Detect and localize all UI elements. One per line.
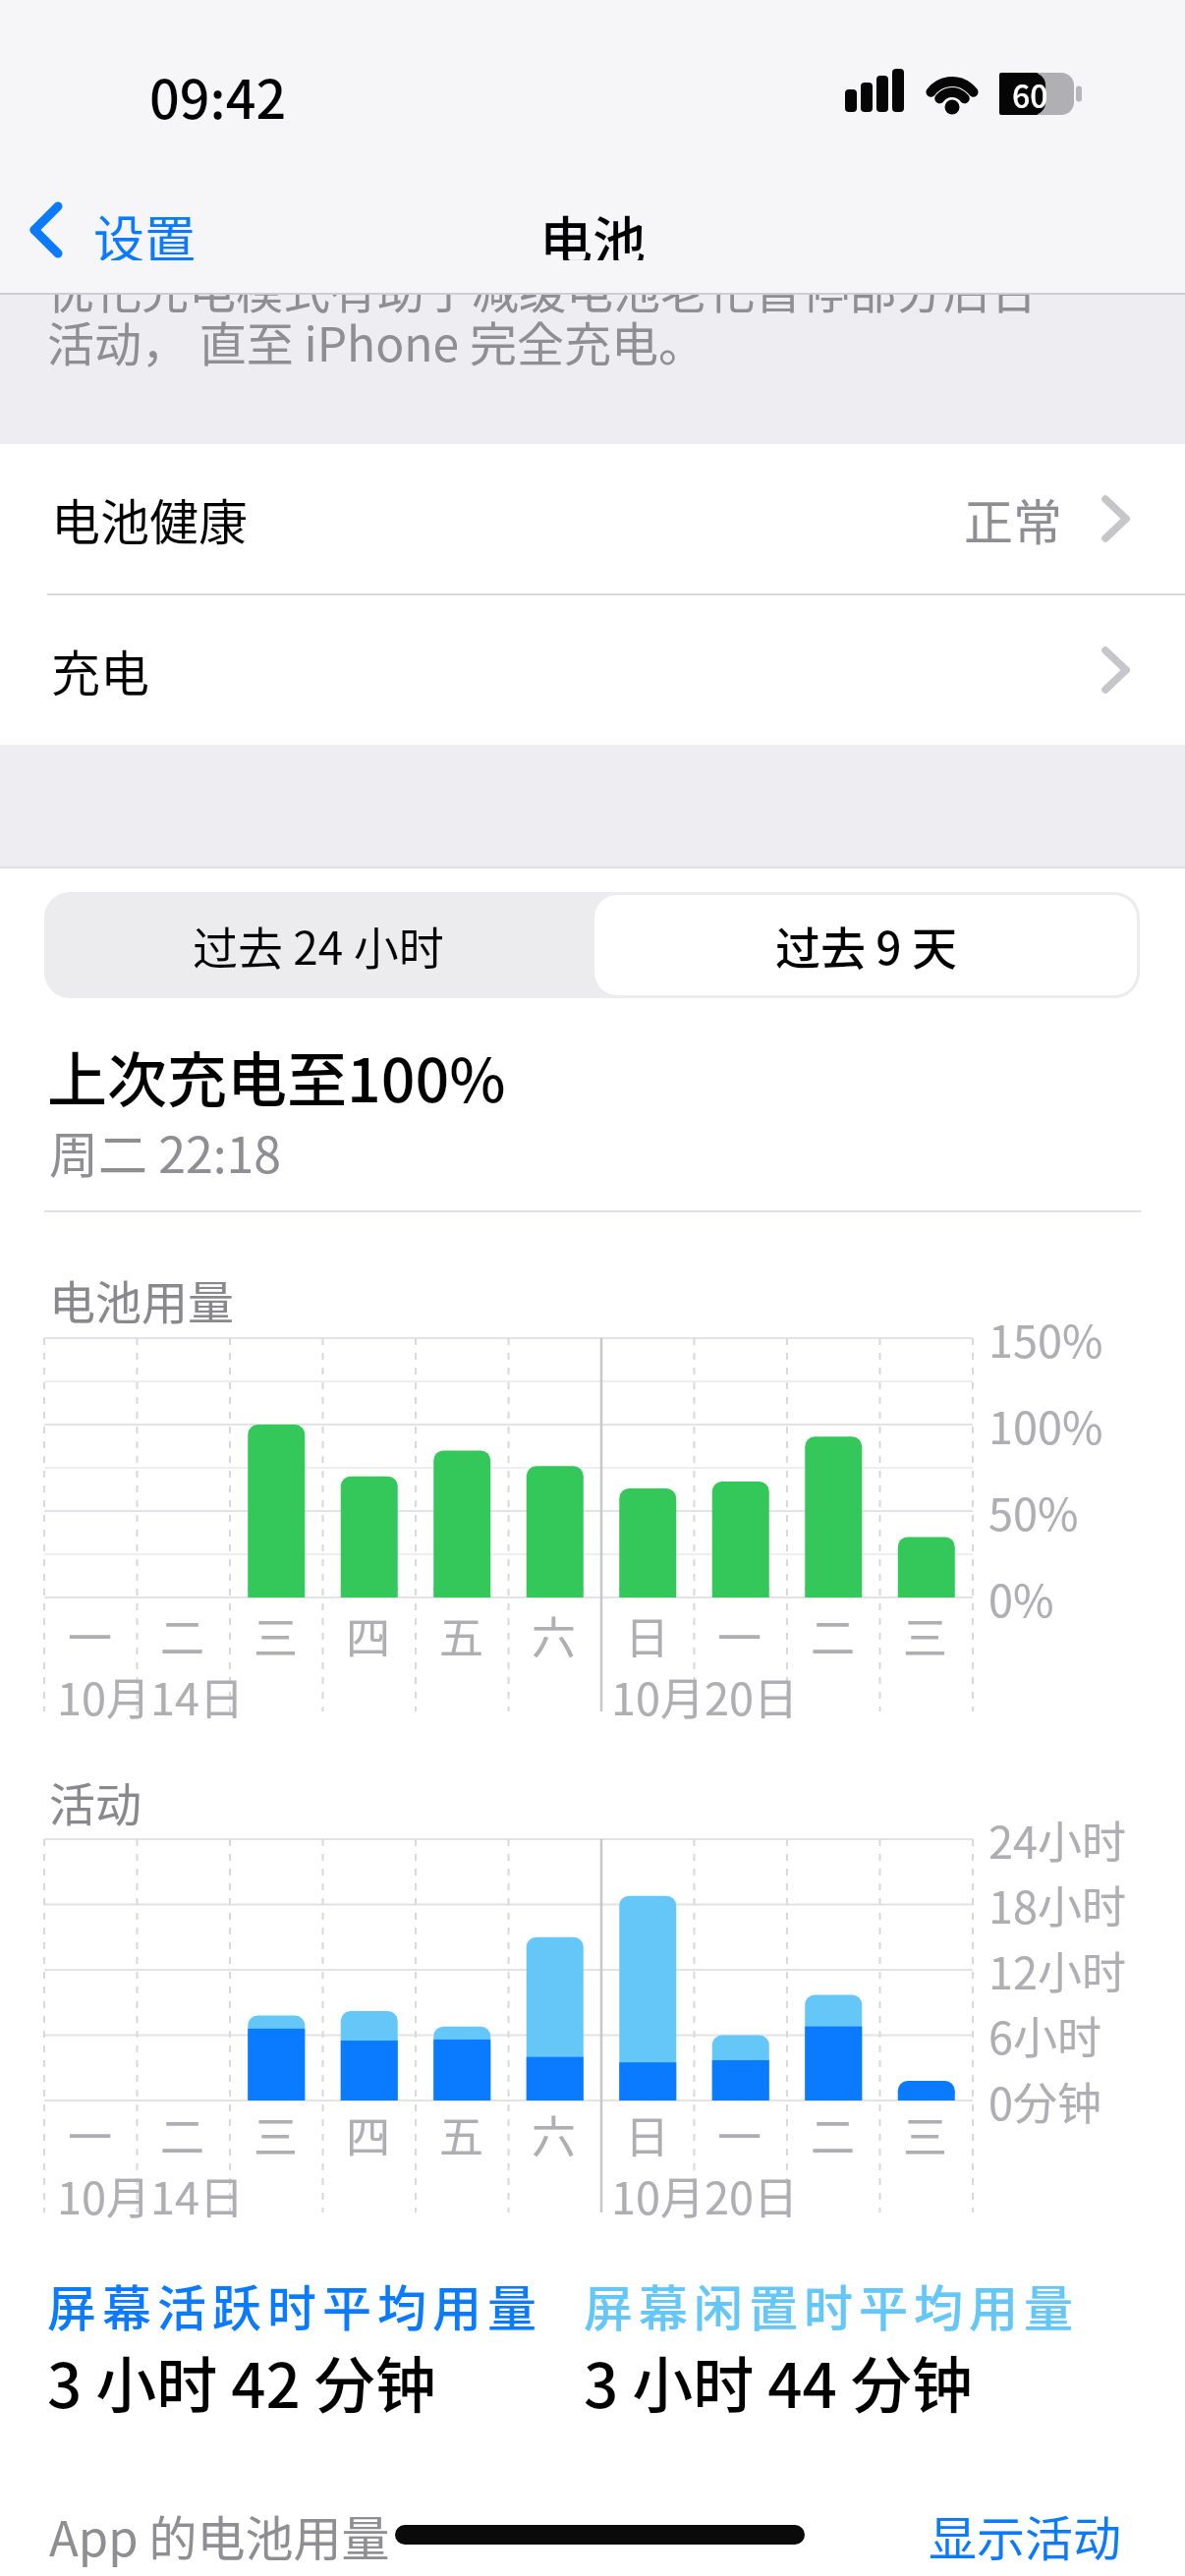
button[interactable]: 电池健康	[0, 444, 1185, 593]
button[interactable]: 设置	[20, 199, 246, 260]
staticText: 屏幕活跃时平均用量	[47, 2269, 542, 2340]
staticText: 过去 9 天	[775, 913, 957, 979]
button[interactable]: 过去 9 天	[594, 895, 1137, 995]
staticText: 50%	[988, 1480, 1079, 1543]
staticText: 10月14日	[57, 2163, 244, 2227]
staticText: 10月20日	[611, 2163, 798, 2227]
staticText: 活动	[49, 1767, 141, 1834]
staticText: 一	[717, 1603, 762, 1667]
staticText: 一	[717, 2102, 762, 2166]
staticText: 二	[811, 1603, 856, 1667]
staticText: 二	[160, 2102, 205, 2166]
staticText: 09:42	[149, 57, 287, 134]
staticText: 周二 22:18	[49, 1116, 282, 1187]
staticText: 六	[532, 2102, 577, 2166]
staticText: 6小时	[988, 2003, 1101, 2067]
staticText: 六	[532, 1603, 577, 1667]
staticText: 四	[346, 1603, 391, 1667]
button[interactable]: 过去 24 小时	[44, 892, 592, 998]
staticText: 电池用量	[49, 1265, 234, 1332]
button[interactable]: 充电	[0, 595, 1185, 745]
staticText: App 的电池用量	[49, 2500, 390, 2570]
staticText: 三	[254, 1603, 299, 1667]
staticText: 0分钟	[988, 2069, 1101, 2133]
staticText: 充电	[51, 635, 149, 705]
staticText: 日	[625, 1603, 670, 1667]
staticText: 一	[68, 1603, 113, 1667]
staticText: 18小时	[988, 1873, 1126, 1936]
staticText: 150%	[988, 1307, 1103, 1371]
staticText: 四	[346, 2102, 391, 2166]
staticText: 活动， 直至 iPhone 完全充电。	[47, 307, 705, 375]
button[interactable]: 显示活动	[929, 2500, 1122, 2570]
staticText: 优化充电模式有助于减缓电池老化暂停部分后台	[47, 295, 1039, 322]
staticText: 二	[160, 1603, 205, 1667]
staticText: 屏幕闲置时平均用量	[584, 2269, 1079, 2340]
staticText: 12小时	[988, 1938, 1126, 2002]
staticText: 100%	[988, 1393, 1103, 1457]
staticText: 三	[254, 2102, 299, 2166]
staticText: 正常	[964, 483, 1062, 554]
staticText: 三	[903, 2102, 948, 2166]
staticText: 过去 24 小时	[193, 913, 444, 979]
staticText: 上次充电至100%	[47, 1033, 506, 1119]
staticText: 一	[68, 2102, 113, 2166]
staticText: 设置	[93, 199, 197, 260]
staticText: 显示活动	[929, 2500, 1122, 2570]
staticText: 60	[1012, 72, 1048, 117]
staticText: 3 小时 42 分钟	[47, 2337, 436, 2426]
staticText: 二	[811, 2102, 856, 2166]
staticText: 10月20日	[611, 1664, 798, 1728]
staticText: 三	[903, 1603, 948, 1667]
staticText: 电池	[539, 199, 646, 260]
staticText: 日	[625, 2102, 670, 2166]
staticText: 0%	[988, 1566, 1054, 1630]
staticText: 10月14日	[57, 1664, 244, 1728]
staticText: 电池健康	[51, 483, 248, 554]
staticText: 五	[439, 1603, 484, 1667]
staticText: 五	[439, 2102, 484, 2166]
staticText: 3 小时 44 分钟	[584, 2337, 973, 2426]
staticText: 24小时	[988, 1808, 1126, 1872]
